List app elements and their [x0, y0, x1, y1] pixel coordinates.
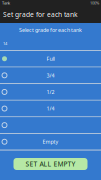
- staticText: Tank: [2, 0, 10, 6]
- button[interactable]: Empty: [0, 134, 101, 150]
- staticText: Set grade for each tank: [3, 10, 78, 19]
- staticText: Select grade for each tank: [19, 26, 82, 34]
- staticText: 1/2: [46, 88, 54, 95]
- staticText: 14: [3, 41, 7, 46]
- staticText: 3/4: [46, 72, 54, 79]
- staticText: SET ALL EMPTY: [25, 160, 75, 168]
- staticText: Empty: [42, 138, 58, 145]
- button[interactable]: 3/4: [0, 67, 101, 83]
- button[interactable]: [0, 117, 101, 133]
- staticText: 100%: [90, 0, 99, 6]
- button[interactable]: 1/2: [0, 84, 101, 100]
- staticText: 1/4: [46, 105, 54, 112]
- button[interactable]: Full: [0, 51, 101, 67]
- staticText: Full: [46, 55, 54, 62]
- button[interactable]: SET ALL EMPTY: [13, 158, 87, 170]
- button[interactable]: 1/4: [0, 101, 101, 116]
